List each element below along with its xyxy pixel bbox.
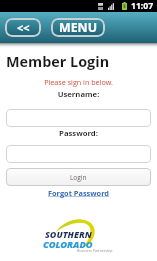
staticText: 11:07 xyxy=(131,0,154,12)
staticText: Please sign in below. xyxy=(0,77,157,87)
button[interactable] xyxy=(6,145,151,163)
staticText: << xyxy=(17,20,30,35)
button[interactable] xyxy=(6,109,151,127)
staticText: MENU xyxy=(59,19,98,36)
staticText: SOUTHERN xyxy=(45,228,92,240)
staticText: Login xyxy=(70,173,87,182)
staticText: Password: xyxy=(0,128,157,138)
staticText: Business Partnership xyxy=(77,248,113,253)
button[interactable]: Back xyxy=(5,18,41,37)
button[interactable]: Login xyxy=(6,168,151,186)
staticText: COLORADO xyxy=(43,238,93,251)
button[interactable]: Forgot Password xyxy=(0,188,157,198)
staticText: Member Login xyxy=(6,52,110,72)
button[interactable]: MENU xyxy=(51,18,105,37)
staticText: Username: xyxy=(0,89,157,99)
